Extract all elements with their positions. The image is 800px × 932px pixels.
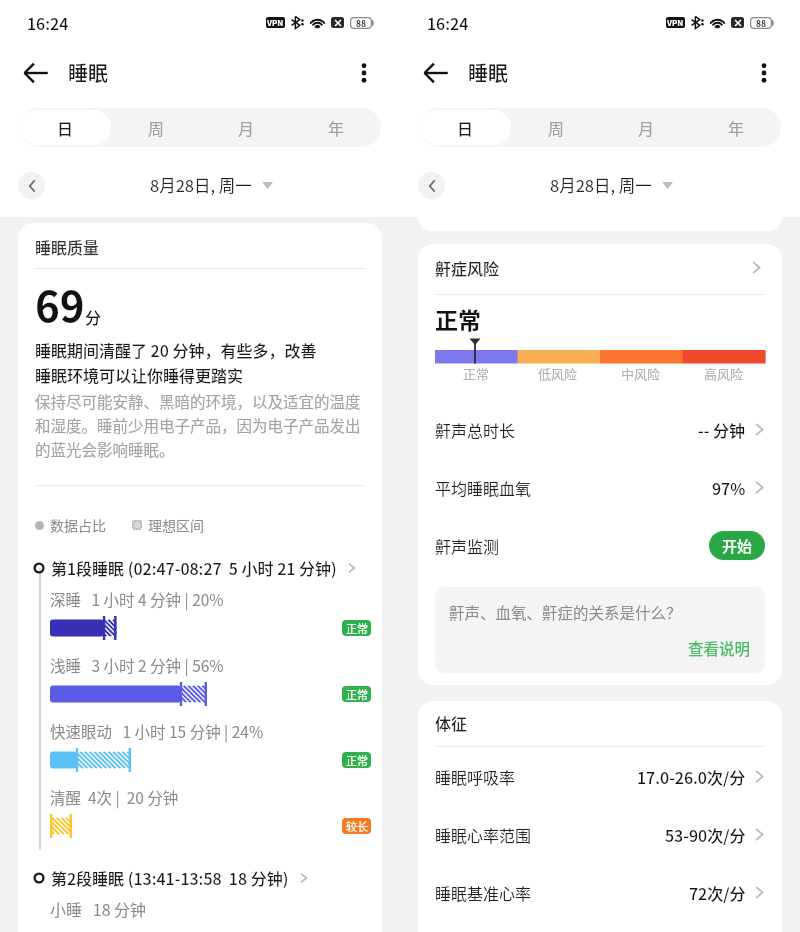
button[interactable]: 睡眠呼吸率 [418, 747, 782, 805]
button[interactable]: 日 [20, 110, 111, 145]
button[interactable]: 年 [691, 110, 781, 145]
staticText: 睡眠期间清醒了 20 分钟，有些多，改善 睡眠环境可以让你睡得更踏实 [35, 338, 317, 387]
staticText: 数据占比 [50, 515, 106, 535]
staticText: 16:24 [27, 11, 69, 34]
staticText: 正常 [346, 752, 368, 768]
staticText: 正常 [435, 302, 481, 335]
staticText: 正常 [463, 364, 490, 383]
staticText: 低风险 [538, 364, 578, 383]
button[interactable]: More options [740, 49, 788, 97]
button[interactable]: 月 [201, 110, 291, 145]
button[interactable]: 8月28日, 周一 [539, 173, 662, 197]
button[interactable]: 日 [420, 110, 511, 145]
button[interactable]: 睡眠心率范围 [418, 805, 782, 863]
staticText: 睡眠 [468, 58, 508, 87]
staticText: 16:24 [427, 11, 469, 34]
staticText: 睡眠呼吸率 [435, 765, 516, 788]
staticText: 年 [328, 116, 345, 139]
button[interactable]: Back [412, 49, 460, 97]
staticText: 睡眠基准心率 [435, 881, 532, 904]
staticText: 88 [756, 17, 767, 29]
button[interactable]: 查看说明 [688, 637, 751, 659]
staticText: 深睡 1 小时 4 分钟 | 20% [50, 588, 224, 610]
staticText: 平均睡眠血氧 [435, 476, 532, 499]
staticText: 鼾症风险 [435, 256, 500, 279]
button[interactable]: Previous day [418, 172, 445, 199]
staticText: 中风险 [621, 364, 661, 383]
staticText: 月 [638, 116, 655, 139]
button[interactable]: 开始 [709, 531, 765, 560]
button[interactable]: 8月28日, 周一 [139, 173, 262, 197]
staticText: 88 [356, 17, 367, 29]
staticText: 72次/分 [689, 881, 746, 904]
staticText: 鼾声总时长 [435, 418, 516, 441]
staticText: 正常 [346, 686, 368, 702]
button[interactable]: 周 [511, 110, 601, 145]
staticText: 体征 [435, 711, 468, 734]
staticText: 浅睡 3 小时 2 分钟 | 56% [50, 654, 224, 676]
staticText: 保持尽可能安静、黑暗的环境，以及适宜的温度和湿度。睡前少用电子产品，因为电子产品… [35, 390, 374, 460]
button[interactable]: 睡眠基准心率 [418, 863, 782, 921]
staticText: 小睡 18 分钟 [50, 897, 147, 920]
staticText: 睡眠 [68, 58, 108, 87]
staticText: 第2段睡眠 (13:41-13:58 18 分钟) [51, 866, 289, 889]
staticText: 年 [728, 116, 745, 139]
staticText: 睡眠心率范围 [435, 823, 532, 846]
staticText: -- 分钟 [698, 418, 746, 441]
button[interactable]: 第2段睡眠 (13:41-13:58 18 分钟) [18, 866, 382, 889]
staticText: VPN [267, 17, 284, 28]
staticText: 鼾声、血氧、鼾症的关系是什么？ [449, 601, 682, 623]
staticText: 第1段睡眠 (02:47-08:27 5 小时 21 分钟) [51, 556, 337, 579]
button[interactable]: Back [12, 49, 60, 97]
button[interactable]: 周 [111, 110, 201, 145]
staticText: 高风险 [704, 364, 744, 383]
button[interactable]: 第1段睡眠 (02:47-08:27 5 小时 21 分钟) [18, 556, 382, 579]
button[interactable]: 月 [601, 110, 691, 145]
staticText: 8月28日, 周一 [550, 173, 652, 197]
staticText: 53-90次/分 [665, 823, 746, 846]
staticText: 日 [457, 116, 474, 139]
staticText: 正常 [346, 620, 368, 636]
staticText: VPN [667, 17, 684, 28]
staticText: 鼾声监测 [435, 534, 500, 557]
staticText: 分 [85, 305, 102, 328]
staticText: 97% [712, 476, 746, 499]
staticText: 周 [148, 116, 165, 139]
button[interactable]: 年 [291, 110, 381, 145]
staticText: 理想区间 [148, 515, 204, 535]
button[interactable]: 鼾声总时长 [418, 400, 782, 458]
staticText: 清醒 4次 | 20 分钟 [50, 786, 179, 808]
staticText: 17.0-26.0次/分 [637, 765, 746, 788]
staticText: 快速眼动 1 小时 15 分钟 | 24% [50, 720, 264, 742]
button[interactable]: More options [340, 49, 388, 97]
staticText: 69 [35, 273, 85, 334]
staticText: 查看说明 [688, 637, 751, 659]
staticText: 睡眠质量 [35, 235, 100, 258]
button[interactable]: 鼾症风险 [418, 256, 782, 279]
button[interactable]: Previous day [18, 172, 45, 199]
staticText: 周 [548, 116, 565, 139]
staticText: 8月28日, 周一 [150, 173, 252, 197]
staticText: 日 [57, 116, 74, 139]
staticText: 开始 [722, 535, 753, 557]
button[interactable]: 平均睡眠血氧 [418, 458, 782, 516]
staticText: 月 [238, 116, 255, 139]
staticText: 较长 [346, 818, 368, 834]
